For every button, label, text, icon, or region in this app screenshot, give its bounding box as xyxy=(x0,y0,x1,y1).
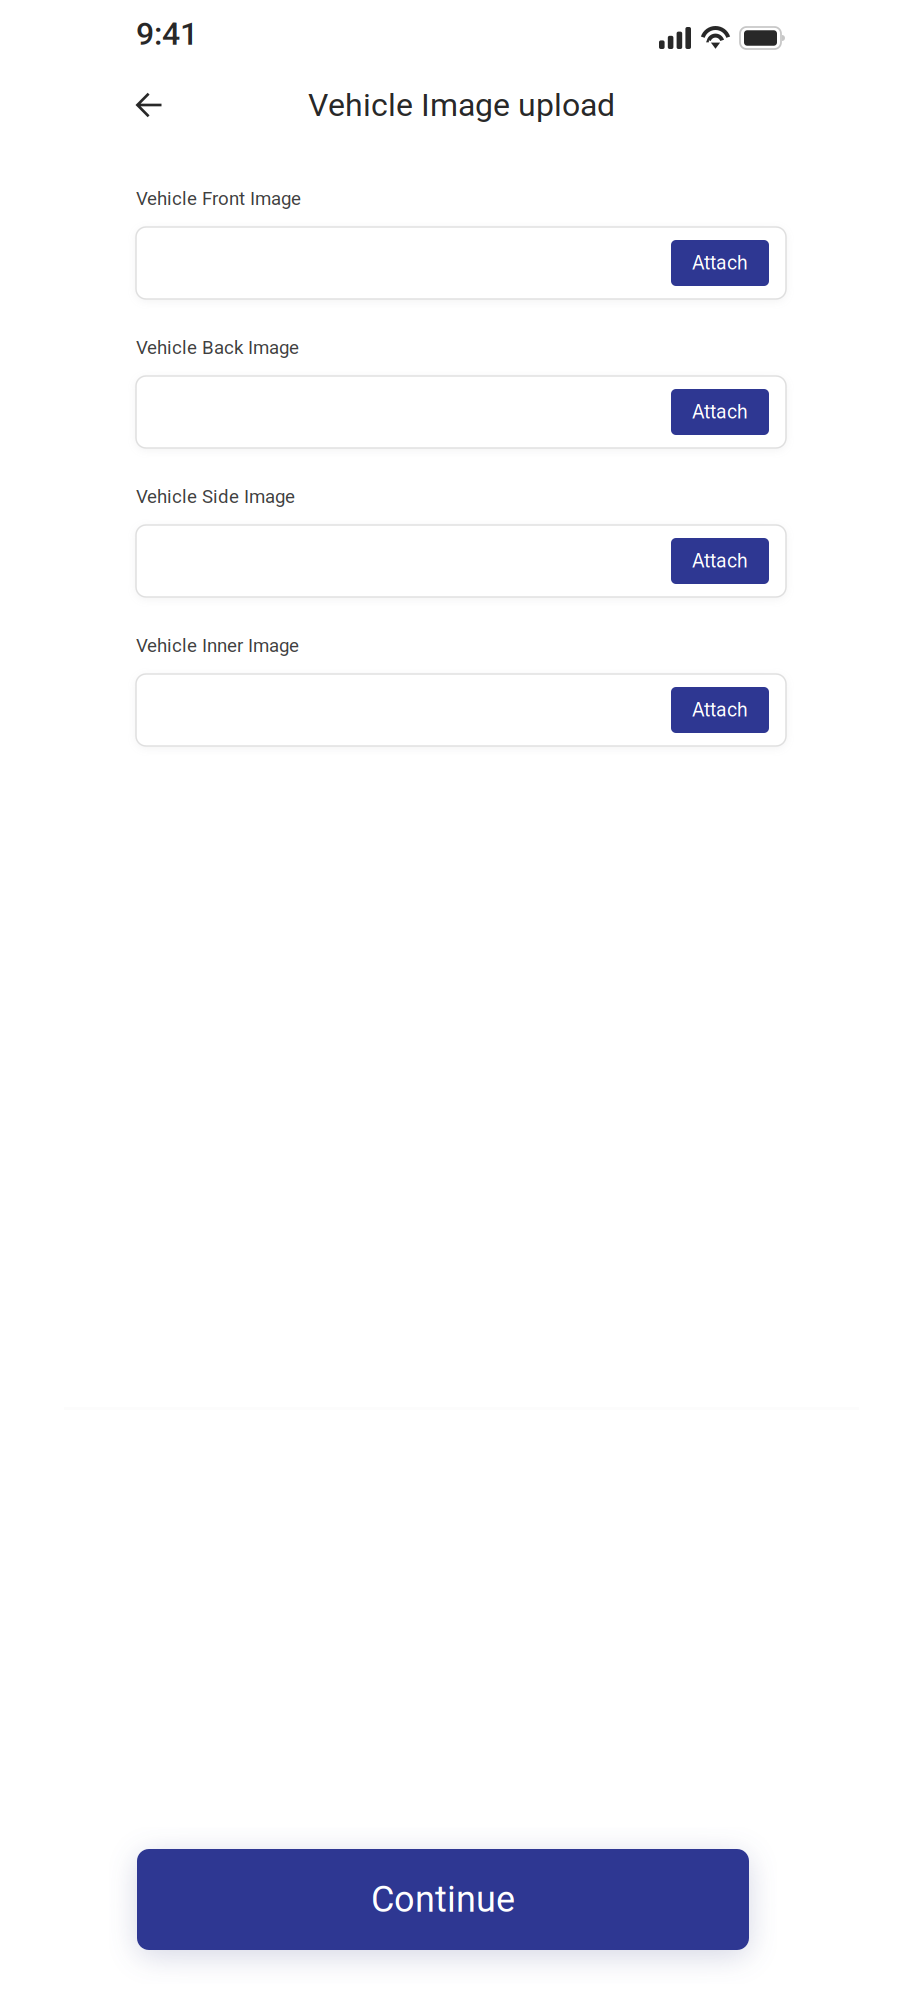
button[interactable]: Attach xyxy=(671,240,769,286)
staticText: Attach xyxy=(692,699,748,721)
staticText: 9:41 xyxy=(136,15,198,52)
staticText: Vehicle Inner Image xyxy=(136,635,299,656)
staticText: Attach xyxy=(692,252,748,274)
staticText: Vehicle Image upload xyxy=(308,86,615,124)
staticText: Attach xyxy=(692,401,748,423)
button[interactable]: Back xyxy=(127,83,171,127)
button[interactable]: Attach xyxy=(671,687,769,733)
button[interactable]: Attach xyxy=(671,538,769,584)
staticText: Continue xyxy=(371,1878,515,1921)
staticText: Vehicle Front Image xyxy=(136,188,301,209)
button[interactable]: Continue xyxy=(137,1849,749,1950)
staticText: Vehicle Back Image xyxy=(136,337,299,358)
button[interactable]: Attach xyxy=(671,389,769,435)
staticText: Vehicle Side Image xyxy=(136,486,295,507)
staticText: Attach xyxy=(692,550,748,572)
